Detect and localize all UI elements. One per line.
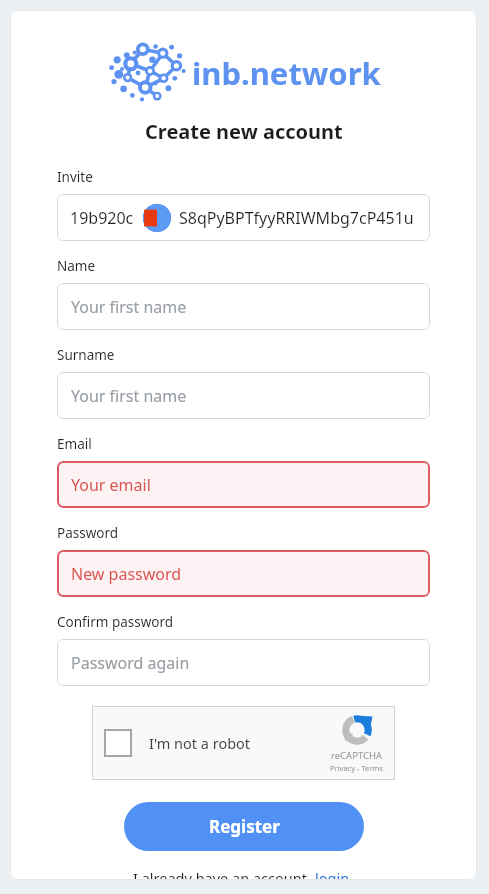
staticText: Register [209,815,280,838]
button[interactable]: login. [315,868,354,880]
staticText: reCAPTCHA [331,749,383,762]
staticText: S8qPyBPTfyyRRIWMbg7cP451u [179,207,414,229]
staticText: Your email [71,474,151,496]
button[interactable]: Your first name [57,283,430,330]
staticText: Your first name [71,385,187,407]
button[interactable]: New password [57,550,430,597]
button[interactable]: inb.network logo [106,40,381,106]
staticText: I'm not a robot [149,733,251,753]
button[interactable]: Password again [57,639,430,686]
staticText: Privacy - Terms [330,763,383,773]
staticText: Password [57,524,119,542]
other: inb.network logo [106,40,186,106]
staticText: Your first name [71,296,187,318]
other: I'm not a robot checkbox [104,729,132,757]
staticText: Confirm password [57,613,174,631]
staticText: Email [57,435,92,453]
staticText: login. [315,868,354,880]
button[interactable]: Your email [57,461,430,508]
staticText: inb.network [192,52,381,94]
staticText: I already have an account, [133,868,315,880]
staticText: Surname [57,346,115,364]
staticText: Create new account [145,118,343,145]
staticText: 19b920c [70,207,134,229]
button[interactable]: 19b920c [57,194,430,241]
staticText: Password again [71,652,190,674]
button[interactable]: I'm not a robot checkbox [92,706,395,780]
button[interactable]: Your first name [57,372,430,419]
button[interactable]: Register [124,802,364,851]
staticText: Name [57,257,96,275]
staticText: New password [71,563,182,585]
staticText: Invite [57,168,93,186]
